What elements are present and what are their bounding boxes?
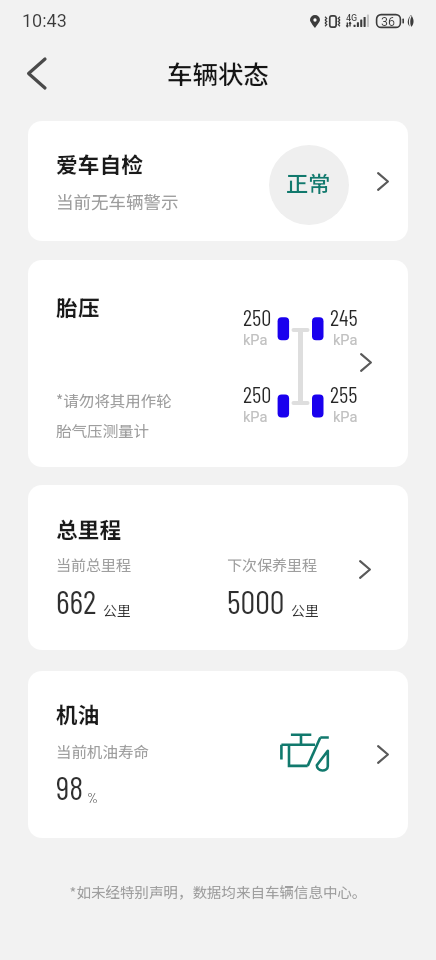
button[interactable]: 机油	[28, 671, 408, 838]
staticText: 爱车自检	[56, 148, 143, 179]
staticText: 98	[56, 767, 84, 807]
staticText: 36	[381, 14, 396, 29]
staticText: kPa	[333, 332, 358, 349]
staticText: kPa	[243, 409, 268, 426]
button[interactable]: 胎压	[28, 260, 408, 467]
staticText: %	[87, 789, 98, 806]
staticText: 胎压	[56, 291, 100, 322]
staticText: 10:43	[22, 10, 67, 31]
staticText: *请勿将其用作轮	[56, 389, 172, 411]
staticText: 公里	[291, 600, 319, 620]
staticText: 255	[330, 380, 358, 407]
staticText: 总里程	[56, 513, 122, 544]
staticText: kPa	[243, 332, 268, 349]
staticText: 正常	[286, 166, 331, 198]
staticText: 下次保养里程	[227, 554, 318, 576]
staticText: 车辆状态	[167, 54, 270, 91]
staticText: 胎气压测量计	[56, 419, 150, 441]
button[interactable]: 总里程	[28, 485, 408, 650]
staticText: *如未经特别声明，数据均来自车辆信息中心。	[0, 881, 436, 902]
button[interactable]: Back	[15, 52, 57, 94]
staticText: 5000	[227, 581, 285, 621]
staticText: 245	[330, 303, 358, 330]
staticText: 250	[243, 303, 272, 330]
staticText: 当前无车辆警示	[56, 189, 179, 214]
button[interactable]: 爱车自检	[28, 121, 408, 241]
staticText: 250	[243, 380, 272, 407]
staticText: 当前总里程	[56, 554, 132, 576]
staticText: 机油	[56, 698, 100, 729]
staticText: 公里	[103, 600, 131, 620]
staticText: 662	[56, 581, 97, 621]
staticText: 4G	[346, 13, 358, 24]
staticText: 当前机油寿命	[56, 740, 150, 762]
staticText: kPa	[333, 409, 358, 426]
